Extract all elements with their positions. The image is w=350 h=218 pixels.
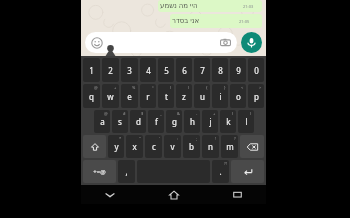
staticText: p: [254, 91, 259, 102]
button[interactable]: r: [140, 84, 156, 108]
button[interactable]: 4: [140, 58, 156, 82]
button[interactable]: j: [202, 110, 218, 133]
staticText: ,: [125, 166, 128, 177]
staticText: +: [114, 85, 117, 90]
button[interactable]: n: [202, 135, 219, 158]
button[interactable]: l: [238, 110, 254, 133]
staticText: s: [118, 116, 122, 127]
button[interactable]: s: [112, 110, 128, 133]
button[interactable]: Camera: [220, 37, 231, 48]
staticText: x: [132, 141, 137, 152]
button[interactable]: v: [164, 135, 181, 158]
staticText: k: [226, 116, 231, 127]
button[interactable]: k: [220, 110, 236, 133]
button[interactable]: q: [83, 84, 100, 108]
button[interactable]: 0: [248, 58, 264, 82]
button[interactable]: Hide keyboard: [99, 185, 121, 204]
button[interactable]: g: [166, 110, 182, 133]
button[interactable]: 3: [121, 58, 138, 82]
button[interactable]: היי מה נשמע: [158, 0, 262, 12]
button[interactable]: Emoji: [85, 32, 237, 53]
staticText: %: [132, 85, 136, 90]
staticText: o: [236, 91, 241, 102]
staticText: n: [208, 141, 213, 152]
staticText: !: [215, 136, 217, 141]
button[interactable]: m: [221, 135, 238, 158]
button[interactable]: 2: [102, 58, 119, 82]
staticText: ": [139, 136, 141, 141]
staticText: j: [209, 116, 212, 127]
button[interactable]: a: [94, 110, 110, 133]
button[interactable]: z: [176, 84, 192, 108]
button[interactable]: x: [126, 135, 143, 158]
button[interactable]: e: [121, 84, 138, 108]
button[interactable]: 9: [230, 58, 246, 82]
staticText: אני בסדר: [172, 16, 200, 26]
button[interactable]: w: [102, 84, 119, 108]
staticText: היי מה נשמע: [160, 1, 198, 11]
staticText: 5: [164, 65, 169, 76]
staticText: t: [165, 91, 168, 102]
staticText: 7: [200, 65, 205, 76]
button[interactable]: d: [130, 110, 146, 133]
staticText: (: [170, 85, 172, 90]
button[interactable]: .: [212, 160, 229, 183]
staticText: *: [119, 136, 122, 141]
button[interactable]: t: [158, 84, 174, 108]
staticText: 4: [146, 65, 151, 76]
button[interactable]: h: [184, 110, 200, 133]
staticText: .: [219, 166, 222, 177]
button[interactable]: Record voice message: [241, 32, 262, 53]
button[interactable]: Backspace: [240, 135, 264, 158]
button[interactable]: 7: [194, 58, 210, 82]
button[interactable]: 1: [83, 58, 100, 82]
staticText: u: [200, 91, 205, 102]
staticText: <: [241, 85, 244, 90]
button[interactable]: אני בסדר: [170, 14, 262, 28]
staticText: 8: [218, 65, 223, 76]
button[interactable]: f: [148, 110, 164, 133]
button[interactable]: Enter: [231, 160, 264, 183]
staticText: >: [259, 85, 262, 90]
button[interactable]: Emoji: [91, 37, 103, 49]
staticText: (: [232, 111, 234, 116]
staticText: 9: [236, 65, 241, 76]
staticText: ): [250, 111, 252, 116]
button[interactable]: Home: [163, 185, 185, 204]
staticText: i: [219, 91, 222, 102]
staticText: l: [245, 116, 248, 127]
button[interactable]: Shift: [83, 135, 106, 158]
staticText: _: [160, 111, 162, 116]
button[interactable]: o: [230, 84, 246, 108]
staticText: &: [177, 111, 180, 116]
staticText: 2: [108, 65, 113, 76]
button[interactable]: y: [108, 135, 124, 158]
button[interactable]: ,: [118, 160, 135, 183]
staticText: q: [89, 91, 94, 102]
button[interactable]: c: [145, 135, 162, 158]
button[interactable]: 8: [212, 58, 228, 82]
button[interactable]: b: [183, 135, 200, 158]
staticText: ?!: [224, 161, 227, 166]
staticText: y: [114, 141, 119, 152]
staticText: +: [213, 111, 216, 116]
button[interactable]: 5: [158, 58, 174, 82]
button[interactable]: 6: [176, 58, 192, 82]
staticText: ?: [234, 136, 236, 141]
button[interactable]: Symbols: [83, 160, 116, 183]
staticText: ): [188, 85, 190, 90]
staticText: 3: [127, 65, 132, 76]
button[interactable]: i: [212, 84, 228, 108]
staticText: z: [182, 91, 186, 102]
staticText: c: [152, 141, 156, 152]
button[interactable]: p: [248, 84, 264, 108]
staticText: :: [177, 136, 179, 141]
staticText: 0: [254, 65, 259, 76]
button[interactable]: u: [194, 84, 210, 108]
button[interactable]: Recent apps: [226, 185, 248, 204]
staticText: ;: [196, 136, 198, 141]
staticText: 1: [89, 65, 94, 76]
staticText: g: [172, 116, 177, 127]
staticText: +=@: [93, 168, 106, 176]
